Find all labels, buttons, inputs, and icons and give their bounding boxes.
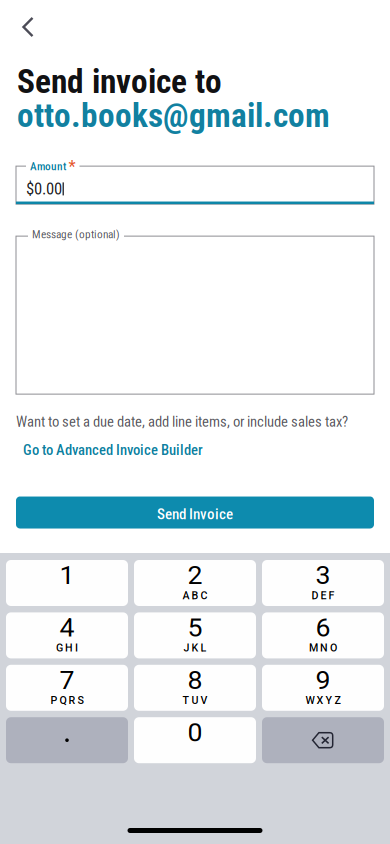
staticText: otto.books@gmail.com: [17, 96, 330, 135]
button[interactable]: Back: [0, 0, 50, 49]
staticText: 7: [59, 664, 74, 695]
staticText: 9: [315, 664, 330, 695]
button[interactable]: Go to Advanced Invoice Builder: [0, 430, 219, 466]
staticText: Go to Advanced Invoice Builder: [23, 441, 203, 458]
staticText: W X Y Z: [305, 694, 340, 706]
button[interactable]: 1: [6, 560, 128, 606]
staticText: *: [68, 157, 75, 176]
staticText: A B C: [182, 589, 207, 602]
button[interactable]: 8: [134, 665, 256, 711]
button[interactable]: 0: [134, 717, 256, 763]
button[interactable]: 5: [134, 612, 256, 658]
button[interactable]: 9: [262, 665, 384, 711]
staticText: 2: [187, 559, 202, 591]
staticText: $0.00: [26, 179, 62, 199]
button[interactable]: Decimal point: [6, 717, 128, 763]
staticText: M N O: [309, 642, 337, 654]
staticText: 0: [187, 717, 202, 748]
button[interactable]: 7: [6, 665, 128, 711]
button[interactable]: Delete: [262, 717, 384, 763]
staticText: J K L: [183, 642, 206, 654]
button[interactable]: 6: [262, 612, 384, 658]
staticText: Send Invoice: [157, 505, 233, 523]
staticText: Want to set a due date, add line items, …: [16, 413, 348, 430]
staticText: Amount: [30, 160, 66, 173]
staticText: 4: [59, 612, 74, 643]
staticText: 1: [59, 559, 74, 591]
staticText: G H I: [56, 642, 78, 654]
button[interactable]: 3: [262, 560, 384, 606]
staticText: 3: [315, 559, 330, 591]
staticText: Send invoice to: [17, 62, 222, 101]
staticText: P Q R S: [50, 694, 83, 706]
staticText: T U V: [182, 694, 207, 706]
staticText: 5: [187, 612, 202, 643]
staticText: Message (optional): [32, 228, 120, 241]
staticText: 8: [187, 664, 202, 695]
staticText: 6: [315, 612, 330, 643]
button[interactable]: 4: [6, 612, 128, 658]
button[interactable]: Send Invoice: [16, 496, 374, 528]
button[interactable]: 2: [134, 560, 256, 606]
staticText: D E F: [311, 589, 334, 602]
